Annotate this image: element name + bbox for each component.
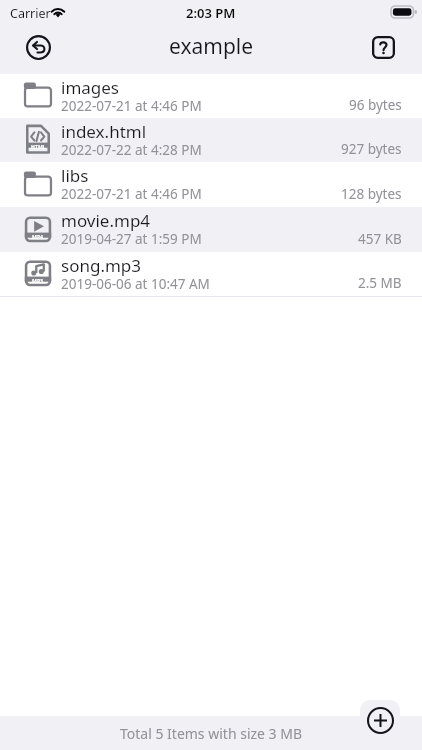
- staticText: 2.5 MB: [358, 274, 402, 292]
- button[interactable]: Help: [372, 36, 395, 59]
- button[interactable]: Back: [26, 35, 51, 60]
- staticText: MP4: [32, 233, 44, 240]
- staticText: movie.mp4: [61, 209, 151, 232]
- staticText: 128 bytes: [341, 185, 402, 203]
- staticText: HTML: [31, 143, 46, 150]
- staticText: index.html: [61, 120, 147, 143]
- staticText: 96 bytes: [349, 96, 402, 114]
- staticText: 2022-07-21 at 4:46 PM: [61, 97, 202, 115]
- button[interactable]: MP3: [0, 252, 422, 296]
- staticText: 2019-06-06 at 10:47 AM: [61, 275, 210, 293]
- staticText: 2019-04-27 at 1:59 PM: [61, 230, 202, 248]
- button[interactable]: HTML: [0, 118, 422, 162]
- staticText: MP3: [32, 277, 44, 284]
- staticText: 2022-07-21 at 4:46 PM: [61, 185, 202, 203]
- staticText: Total 5 Items with size 3 MB: [120, 724, 303, 743]
- staticText: images: [61, 76, 120, 99]
- button[interactable]: MP4: [0, 207, 422, 252]
- button[interactable]: Add: [360, 700, 400, 740]
- staticText: libs: [61, 164, 89, 187]
- button[interactable]: libs: [0, 162, 422, 207]
- staticText: 2022-07-22 at 4:28 PM: [61, 141, 202, 159]
- staticText: 927 bytes: [341, 140, 402, 158]
- button[interactable]: Add file: [367, 707, 394, 734]
- staticText: example: [169, 32, 254, 61]
- button[interactable]: images: [0, 74, 422, 118]
- staticText: song.mp3: [61, 254, 142, 277]
- staticText: 2:03 PM: [186, 4, 236, 22]
- staticText: Carrier: [10, 5, 51, 22]
- staticText: 457 KB: [358, 230, 402, 248]
